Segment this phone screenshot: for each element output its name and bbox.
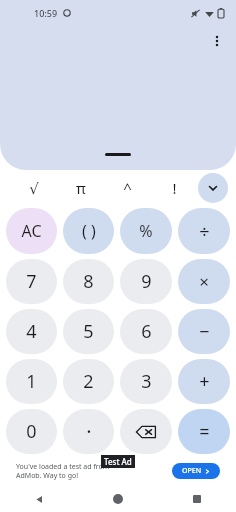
staticText: 4 <box>26 319 37 344</box>
staticText: 3 <box>141 369 152 394</box>
button[interactable]: 6 <box>120 309 172 354</box>
button[interactable]: 9 <box>120 259 172 304</box>
staticText: % <box>139 220 153 242</box>
button[interactable]: 0 <box>6 409 57 454</box>
button[interactable]: · <box>63 409 114 454</box>
button[interactable]: 8 <box>63 259 114 304</box>
button[interactable]: OPEN <box>172 463 220 479</box>
staticText: 0 <box>26 419 37 444</box>
button[interactable]: Expand history <box>99 147 137 162</box>
button[interactable]: AC <box>6 208 57 254</box>
staticText: 2 <box>83 369 94 394</box>
button[interactable]: ^ <box>104 170 151 206</box>
staticText: 9 <box>141 269 152 294</box>
button[interactable]: 1 <box>6 359 57 404</box>
staticText: = <box>199 419 210 444</box>
button[interactable]: 7 <box>6 259 57 304</box>
button[interactable]: π <box>57 170 104 206</box>
button[interactable]: % <box>120 208 172 254</box>
button[interactable]: Recent apps <box>157 486 236 512</box>
staticText: 5 <box>83 319 94 344</box>
staticText: √ <box>29 180 39 197</box>
button[interactable]: ! <box>151 170 198 206</box>
staticText: ! <box>172 178 177 198</box>
button[interactable]: = <box>178 409 230 454</box>
staticText: You've loaded a test ad from AdMob. Way … <box>16 462 172 480</box>
staticText: · <box>86 418 92 445</box>
button[interactable]: 5 <box>63 309 114 354</box>
button[interactable]: √ <box>10 170 57 206</box>
staticText: ( ) <box>82 220 96 242</box>
button[interactable]: ÷ <box>178 208 230 254</box>
staticText: ^ <box>123 178 132 198</box>
button[interactable]: × <box>178 259 230 304</box>
button[interactable]: More functions <box>198 173 228 203</box>
button[interactable]: 2 <box>63 359 114 404</box>
staticText: − <box>199 319 210 344</box>
staticText: × <box>199 270 209 293</box>
button[interactable]: 3 <box>120 359 172 404</box>
staticText: OPEN <box>182 466 202 476</box>
button[interactable]: − <box>178 309 230 354</box>
staticText: 8 <box>83 269 94 294</box>
button[interactable]: Home <box>78 486 157 512</box>
staticText: 6 <box>141 319 152 344</box>
staticText: π <box>76 178 86 198</box>
button[interactable]: 4 <box>6 309 57 354</box>
staticText: 10:59 <box>34 7 58 19</box>
button[interactable]: You've loaded a test ad from AdMob. Way … <box>10 456 226 486</box>
staticText: 7 <box>26 269 37 294</box>
button[interactable]: ( ) <box>63 208 114 254</box>
button[interactable]: Backspace <box>120 409 172 454</box>
button[interactable]: + <box>178 359 230 404</box>
button[interactable]: More options <box>204 28 230 54</box>
staticText: ÷ <box>199 219 210 244</box>
staticText: 1 <box>26 369 37 394</box>
staticText: AC <box>21 220 42 242</box>
staticText: + <box>199 369 210 394</box>
button[interactable]: Back <box>0 486 78 512</box>
staticText: Test Ad <box>104 456 132 467</box>
